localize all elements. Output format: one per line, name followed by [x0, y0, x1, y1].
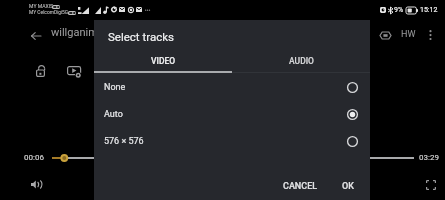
staticText: 576 × 576 [104, 136, 144, 147]
staticText: 00:06 [24, 153, 44, 162]
staticText: 03:29 [419, 153, 439, 162]
button[interactable]: Video settings [63, 61, 84, 82]
staticText: None [104, 82, 126, 93]
staticText: 15:12 [420, 6, 438, 14]
staticText: MY MAXIS [29, 3, 54, 9]
staticText: OK [342, 181, 354, 192]
button[interactable]: VIDEO [94, 52, 232, 70]
staticText: VIDEO [151, 56, 176, 66]
button[interactable]: Lock screen [30, 60, 51, 81]
staticText: 9% [394, 6, 404, 14]
button[interactable]: Back [25, 25, 46, 46]
button[interactable]: 576 × 576 [94, 128, 370, 155]
staticText: HW [401, 29, 416, 40]
button[interactable]: Auto [94, 101, 370, 128]
staticText: Select tracks [108, 30, 174, 43]
button[interactable]: Select tracks [377, 27, 394, 44]
staticText: Auto [104, 109, 123, 120]
button[interactable]: More options [421, 26, 439, 44]
button[interactable]: CANCEL [273, 177, 328, 196]
button[interactable]: AUDIO [232, 52, 370, 70]
button[interactable]: None [94, 74, 370, 101]
staticText: AUDIO [289, 56, 314, 66]
staticText: 5G [62, 9, 69, 15]
button[interactable]: Fullscreen [420, 174, 441, 195]
button[interactable]: Volume [26, 174, 47, 195]
staticText: willganim [51, 26, 98, 39]
staticText: CANCEL [283, 181, 318, 192]
staticText: MY CelcomDigi [29, 9, 63, 15]
button[interactable]: OK [328, 177, 370, 196]
